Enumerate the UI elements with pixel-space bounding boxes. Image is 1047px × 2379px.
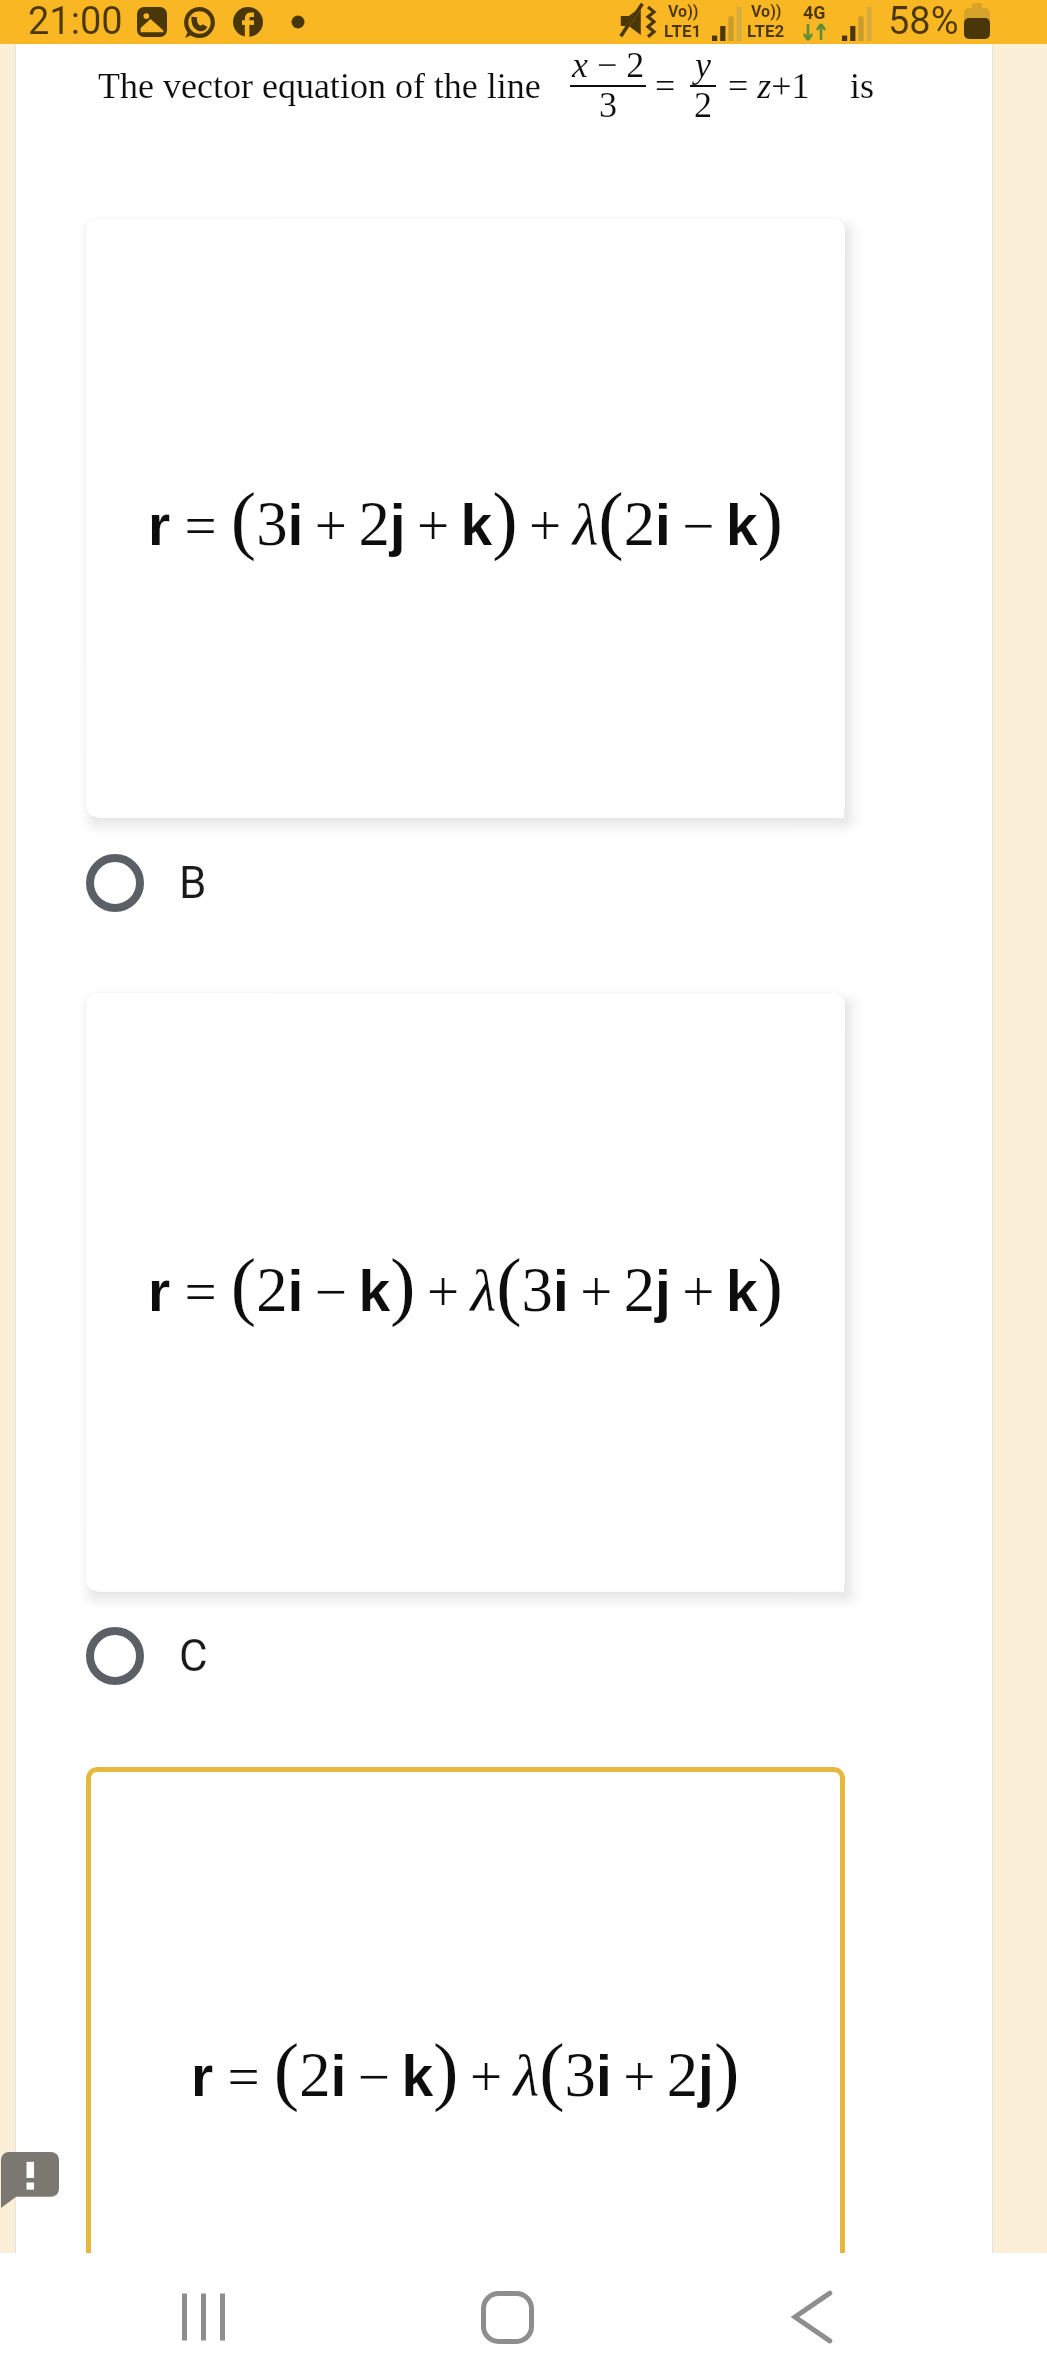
staticText: LTE1 <box>664 21 702 41</box>
staticText: r = (2i − k) + λ(3i + 2j) <box>191 2028 740 2113</box>
staticText: 2 <box>694 85 712 125</box>
button[interactable]: B <box>0 828 1047 938</box>
staticText: The vector equation of the line <box>98 66 541 106</box>
staticText: 4G <box>803 2 826 23</box>
staticText: = <box>655 66 676 106</box>
staticText: B <box>179 857 207 909</box>
staticText: Vo)) <box>751 2 782 21</box>
staticText: 3 <box>599 85 617 125</box>
staticText: x − 2 <box>572 45 645 85</box>
staticText: = z+1 <box>728 66 810 106</box>
staticText: y <box>695 45 711 85</box>
staticText: 21:00 <box>28 0 123 43</box>
staticText: Vo)) <box>668 2 699 21</box>
staticText: C <box>179 1630 208 1682</box>
button[interactable]: r = (2i − k) + λ(3i + 2j + k) <box>86 993 845 1591</box>
staticText: r = (2i − k) + λ(3i + 2j + k) <box>148 1243 784 1328</box>
staticText: 58% <box>888 0 959 43</box>
button[interactable]: Back <box>753 2253 873 2379</box>
staticText: r = (3i + 2j + k) + λ(2i − k) <box>148 477 784 562</box>
staticText: is <box>850 66 875 106</box>
button[interactable]: Home <box>447 2253 567 2379</box>
button[interactable]: r = (3i + 2j + k) + λ(2i − k) <box>86 219 845 817</box>
button[interactable]: C <box>0 1601 1047 1711</box>
button[interactable]: r = (2i − k) + λ(3i + 2j) <box>86 1767 845 2365</box>
button[interactable]: Recent apps <box>147 2253 267 2379</box>
staticText: LTE2 <box>747 21 785 41</box>
button[interactable]: Report a problem <box>1 2152 59 2208</box>
